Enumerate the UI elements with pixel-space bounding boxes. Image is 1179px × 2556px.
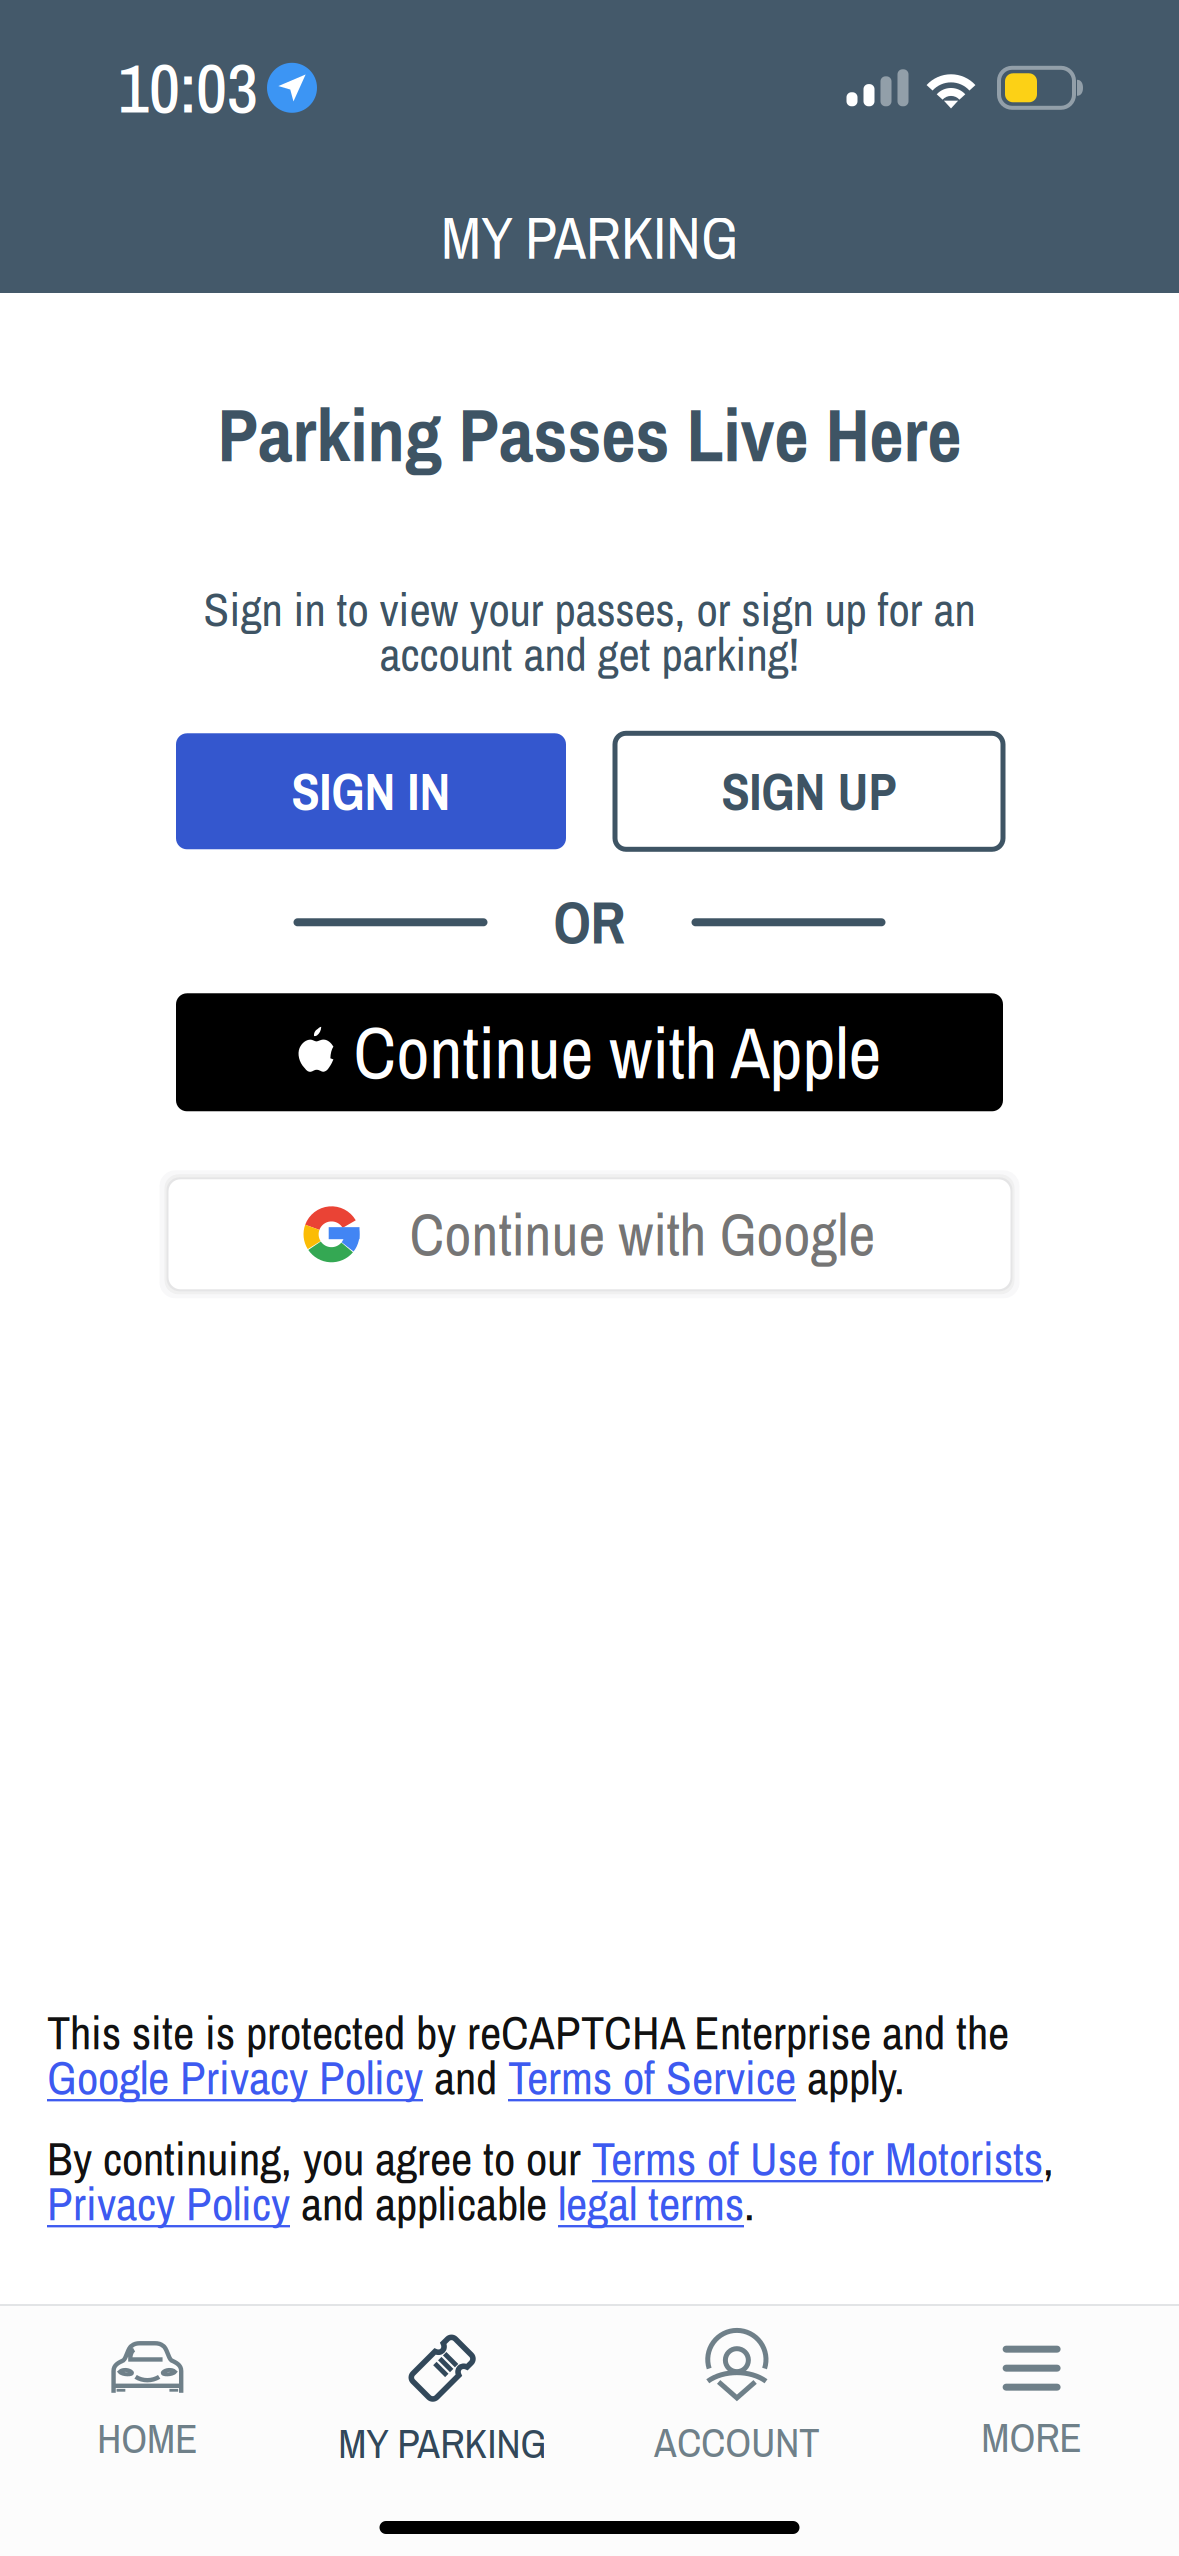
button[interactable]: HOME bbox=[0, 2340, 295, 2466]
staticText: SIGN UP bbox=[721, 756, 896, 826]
staticText: This site is protected by reCAPTCHA Ente… bbox=[47, 2001, 1009, 2064]
staticText: Sign in to view your passes, or sign up … bbox=[203, 578, 975, 640]
staticText: Parking Passes Live Here bbox=[217, 384, 961, 485]
button[interactable]: MORE bbox=[884, 2341, 1179, 2465]
staticText: Continue with Google bbox=[409, 1195, 875, 1274]
staticText: HOME bbox=[97, 2410, 198, 2466]
staticText: Terms of Service bbox=[508, 2046, 796, 2109]
staticText: By continuing, you agree to our bbox=[47, 2127, 592, 2190]
staticText: Continue with Apple bbox=[353, 1004, 881, 1101]
button[interactable]: SIGN IN bbox=[176, 733, 566, 849]
staticText: and applicable bbox=[290, 2172, 558, 2235]
staticText: apply. bbox=[796, 2046, 905, 2109]
button[interactable]: MY PARKING bbox=[295, 2335, 590, 2471]
staticText: . bbox=[744, 2172, 755, 2235]
staticText: and bbox=[423, 2046, 508, 2109]
staticText: MY PARKING bbox=[338, 2415, 546, 2471]
staticText: , bbox=[1043, 2127, 1054, 2190]
button[interactable]: Continue with Google bbox=[159, 1170, 1019, 1298]
staticText: MY PARKING bbox=[441, 198, 738, 277]
staticText: Google Privacy Policy bbox=[47, 2046, 423, 2109]
staticText: MORE bbox=[981, 2409, 1082, 2465]
staticText: Terms of Use for Motorists bbox=[592, 2127, 1043, 2190]
staticText: Privacy Policy bbox=[47, 2172, 290, 2235]
staticText: OR bbox=[553, 883, 625, 962]
staticText: account and get parking! bbox=[379, 622, 799, 685]
staticText: legal terms bbox=[558, 2172, 744, 2235]
staticText: ACCOUNT bbox=[654, 2414, 820, 2470]
button[interactable]: SIGN UP bbox=[615, 733, 1003, 849]
button[interactable]: ACCOUNT bbox=[589, 2336, 884, 2470]
staticText: SIGN IN bbox=[291, 756, 450, 826]
staticText: 10:03 bbox=[118, 42, 258, 134]
button[interactable]: Continue with Apple bbox=[176, 993, 1003, 1111]
